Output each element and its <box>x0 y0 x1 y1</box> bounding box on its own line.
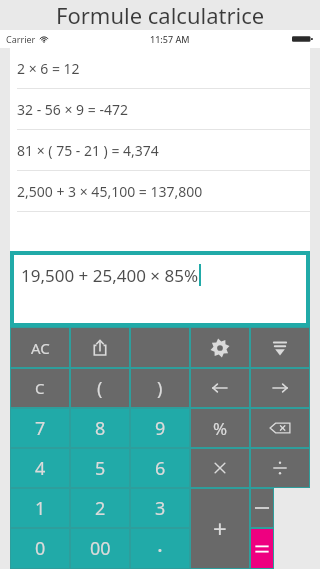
button[interactable]: 3 <box>131 489 189 527</box>
staticText: 0 <box>35 536 46 561</box>
button[interactable]: AC <box>11 328 69 367</box>
button[interactable]: 7 <box>11 409 69 447</box>
staticText: 32 - 56 × 9 = -472 <box>17 100 128 119</box>
staticText: + <box>213 512 227 545</box>
staticText: 2 × 6 = 12 <box>17 59 80 78</box>
button[interactable]: Move right <box>251 369 309 407</box>
staticText: 4 <box>35 456 46 481</box>
staticText: · <box>157 534 163 564</box>
button[interactable]: 81 × ( 75 - 21 ) = 4,374 <box>10 130 310 171</box>
button[interactable]: 1 <box>11 489 69 527</box>
staticText: 19,500 + 25,400 × 85% <box>21 264 199 287</box>
button[interactable]: 00 <box>71 529 129 568</box>
staticText: 81 × ( 75 - 21 ) = 4,374 <box>17 141 159 160</box>
button[interactable]: Multiply <box>191 449 249 487</box>
staticText: Formule calculatrice <box>56 0 265 30</box>
button[interactable]: 0 <box>11 529 69 568</box>
button[interactable]: + <box>191 489 249 568</box>
button[interactable]: Equals <box>251 529 273 568</box>
button[interactable]: 9 <box>131 409 189 447</box>
staticText: ( <box>97 376 103 401</box>
staticText: 11:57 AM <box>150 33 190 45</box>
button[interactable]: Minus <box>251 489 273 527</box>
button[interactable]: C <box>11 369 69 407</box>
button[interactable]: Divide <box>251 449 309 487</box>
staticText: 6 <box>155 456 166 481</box>
staticText: 3 <box>155 496 166 521</box>
button[interactable]: 32 - 56 × 9 = -472 <box>10 89 310 130</box>
button[interactable]: · <box>131 529 189 568</box>
staticText: 1 <box>35 496 46 521</box>
staticText: Carrier <box>6 33 36 45</box>
staticText: 7 <box>35 416 46 441</box>
button[interactable]: Hide keyboard <box>251 328 309 367</box>
button[interactable]: Backspace <box>251 409 309 447</box>
button[interactable]: Settings <box>191 328 249 367</box>
button[interactable]: Move left <box>191 369 249 407</box>
button[interactable]: 2 <box>71 489 129 527</box>
button[interactable]: 5 <box>71 449 129 487</box>
button[interactable]: ( <box>71 369 129 407</box>
button[interactable]: 4 <box>11 449 69 487</box>
staticText: 8 <box>95 416 106 441</box>
button[interactable]: 19,500 + 25,400 × 85% <box>14 255 306 323</box>
button[interactable]: 2,500 + 3 × 45,100 = 137,800 <box>10 171 310 212</box>
staticText: ) <box>157 376 163 401</box>
button[interactable]: 6 <box>131 449 189 487</box>
staticText: 9 <box>155 416 166 441</box>
staticText: 2 <box>95 496 106 521</box>
staticText: 00 <box>90 536 111 561</box>
staticText: % <box>213 417 228 440</box>
button[interactable]: 8 <box>71 409 129 447</box>
staticText: 2,500 + 3 × 45,100 = 137,800 <box>17 182 203 201</box>
button[interactable]: ) <box>131 369 189 407</box>
button[interactable]: Share <box>71 328 129 367</box>
staticText: AC <box>31 338 50 358</box>
button[interactable]: 2 × 6 = 12 <box>10 48 310 89</box>
staticText: C <box>35 378 45 398</box>
staticText: 5 <box>95 456 106 481</box>
button[interactable]: % <box>191 409 249 447</box>
